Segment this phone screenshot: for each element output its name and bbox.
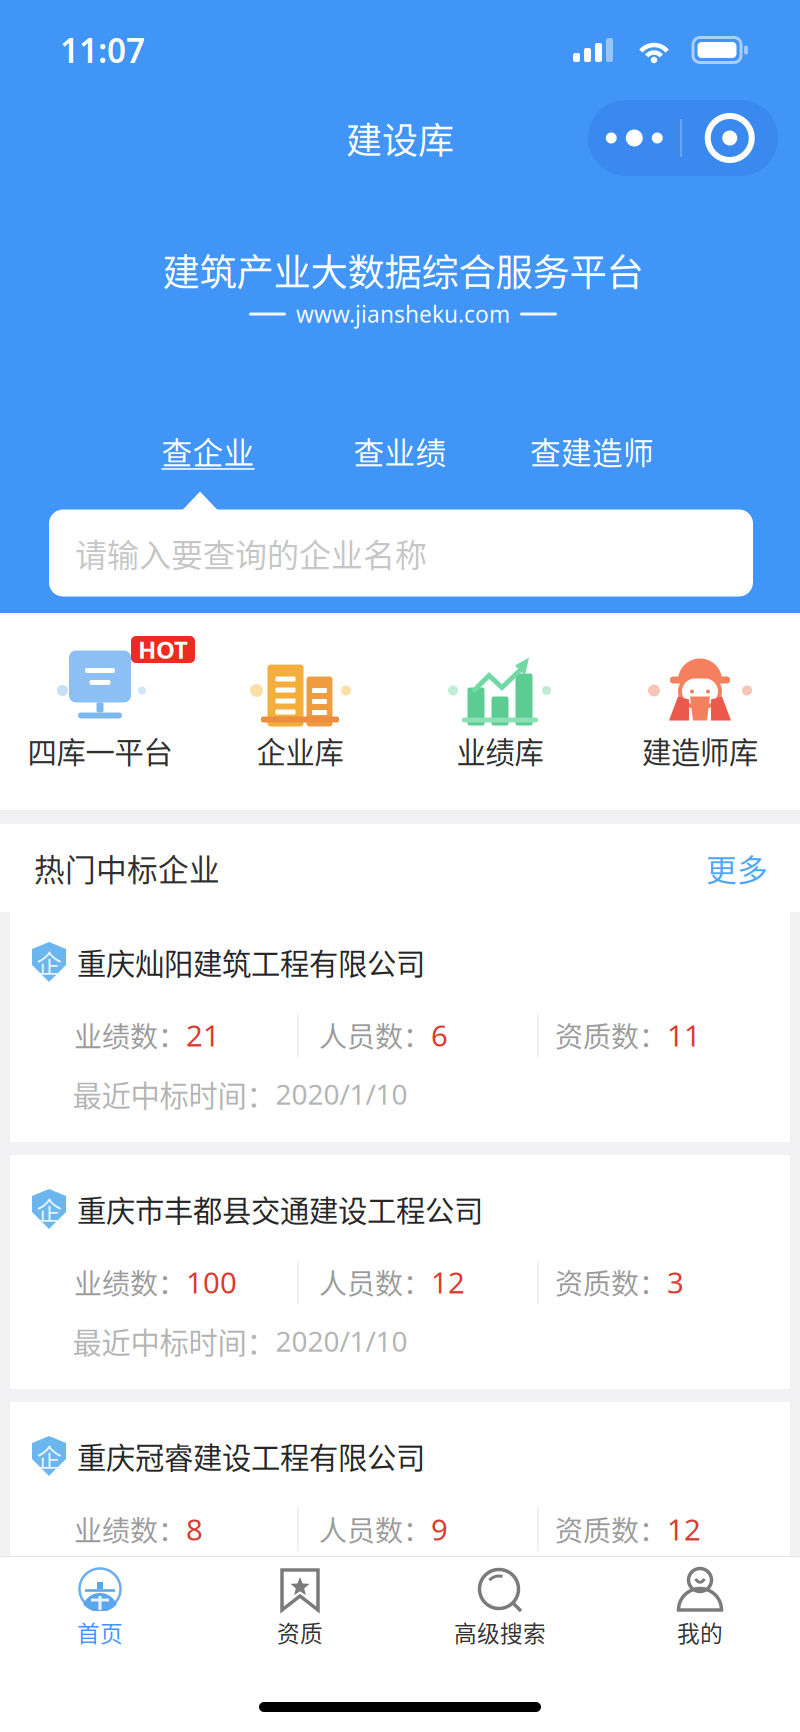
- staticText: 人员数: [319, 1262, 403, 1302]
- staticText: 热门中标企业: [34, 846, 220, 890]
- button[interactable]: 更多菜单: [588, 100, 778, 176]
- button[interactable]: 更多: [706, 846, 768, 890]
- staticText: 12: [431, 1262, 465, 1301]
- button[interactable]: 业绩库: [400, 618, 600, 801]
- button[interactable]: 建造师库: [600, 618, 800, 801]
- staticText: www.jiansheku.com: [296, 299, 510, 329]
- staticText: 12: [667, 1509, 701, 1548]
- button[interactable]: 企: [10, 1155, 790, 1389]
- staticText: 企: [36, 1191, 61, 1227]
- staticText: 业绩数: [74, 1509, 158, 1549]
- button[interactable]: 企: [10, 908, 790, 1142]
- staticText: HOT: [138, 634, 188, 665]
- staticText: 重庆冠睿建设工程有限公司: [77, 1435, 425, 1477]
- staticText: 建筑产业大数据综合服务平台: [162, 243, 643, 297]
- staticText: 最近中标时间：: [72, 1073, 275, 1115]
- staticText: 企: [36, 1438, 61, 1474]
- button[interactable]: HOT: [0, 618, 200, 801]
- staticText: 业绩库: [456, 729, 543, 772]
- button[interactable]: 首页: [0, 1562, 200, 1662]
- staticText: ：: [403, 1509, 431, 1549]
- staticText: 11: [667, 1015, 701, 1054]
- staticText: 100: [186, 1262, 237, 1301]
- button[interactable]: 查业绩: [304, 424, 496, 478]
- button[interactable]: 请输入要查询的企业名称: [49, 509, 753, 596]
- staticText: ：: [403, 1015, 431, 1055]
- button[interactable]: 高级搜索: [400, 1562, 600, 1662]
- staticText: 人员数: [319, 1509, 403, 1549]
- staticText: 首页: [77, 1616, 123, 1648]
- staticText: ：: [639, 1015, 667, 1055]
- staticText: ：: [158, 1262, 186, 1302]
- staticText: 建造师库: [642, 729, 758, 772]
- staticText: ：: [158, 1509, 186, 1549]
- staticText: 查企业: [161, 429, 254, 473]
- staticText: 8: [186, 1509, 203, 1548]
- staticText: 高级搜索: [454, 1616, 546, 1648]
- staticText: 更多: [706, 846, 768, 890]
- staticText: 资质数: [555, 1262, 639, 1302]
- staticText: 11:07: [60, 28, 145, 72]
- staticText: 21: [186, 1015, 220, 1054]
- staticText: 业绩数: [74, 1262, 158, 1302]
- staticText: 6: [431, 1015, 448, 1054]
- staticText: 2020/1/10: [275, 1322, 407, 1360]
- staticText: 资质数: [555, 1509, 639, 1549]
- staticText: ：: [639, 1262, 667, 1302]
- button[interactable]: 企业库: [200, 618, 400, 801]
- button[interactable]: 查建造师: [496, 424, 688, 478]
- staticText: 3: [667, 1262, 684, 1301]
- staticText: 四库一平台: [27, 729, 172, 772]
- staticText: ：: [403, 1262, 431, 1302]
- button[interactable]: 查企业: [112, 424, 304, 478]
- button[interactable]: 我的: [600, 1562, 800, 1662]
- staticText: 业绩数: [74, 1015, 158, 1055]
- staticText: 人员数: [319, 1015, 403, 1055]
- staticText: 查建造师: [530, 429, 654, 473]
- staticText: 重庆市丰都县交通建设工程公司: [77, 1188, 483, 1230]
- staticText: 企业库: [256, 729, 343, 772]
- staticText: 建设库: [346, 112, 454, 164]
- button[interactable]: 资质: [200, 1562, 400, 1662]
- staticText: 查业绩: [353, 429, 446, 473]
- staticText: ：: [158, 1015, 186, 1055]
- staticText: 2020/1/10: [275, 1075, 407, 1113]
- staticText: 资质数: [555, 1015, 639, 1055]
- staticText: 我的: [677, 1616, 723, 1648]
- staticText: 资质: [277, 1616, 323, 1648]
- staticText: 重庆灿阳建筑工程有限公司: [77, 941, 425, 983]
- staticText: 9: [431, 1509, 448, 1548]
- staticText: 请输入要查询的企业名称: [75, 530, 427, 576]
- staticText: 最近中标时间：: [72, 1320, 275, 1362]
- staticText: 企: [36, 944, 61, 980]
- staticText: ：: [639, 1509, 667, 1549]
- button[interactable]: 企: [10, 1402, 790, 1636]
